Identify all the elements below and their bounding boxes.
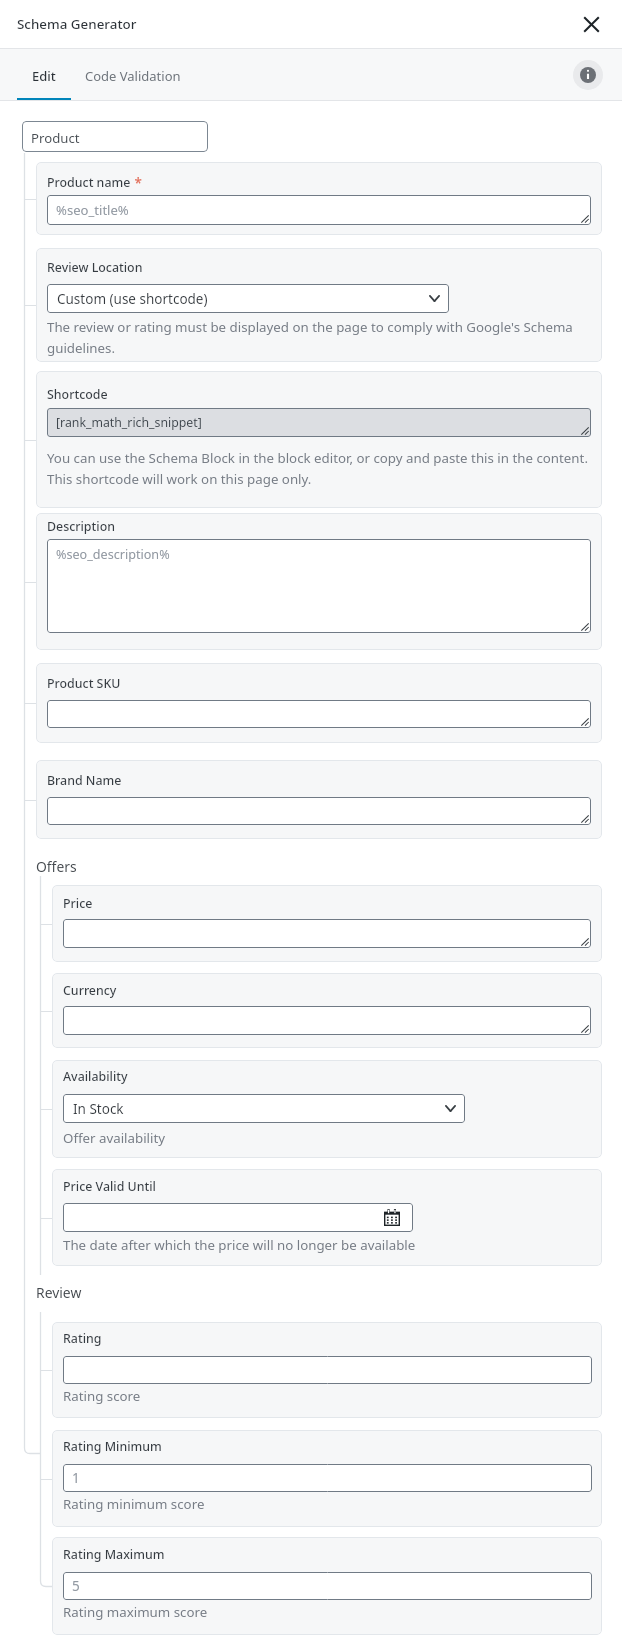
button[interactable] [47,700,591,728]
button[interactable] [63,919,591,948]
staticText: 5 [72,1577,80,1595]
button[interactable] [63,1006,591,1035]
button[interactable]: Edit [17,48,71,101]
button[interactable]: Information [573,60,603,90]
staticText: Product [31,129,80,147]
staticText: Edit [32,67,56,85]
button[interactable]: Pick date [63,1203,413,1232]
staticText: You can use the Schema Block in the bloc… [47,449,590,488]
staticText: Rating Maximum [63,1546,165,1563]
staticText: Product SKU [47,675,121,692]
staticText: Currency [63,982,117,999]
staticText: * [131,174,142,192]
staticText: %seo_title% [56,201,129,219]
staticText: [rank_math_rich_snippet] [56,414,202,431]
button[interactable]: %seo_description% [47,539,591,633]
staticText: Schema Generator [17,15,137,33]
staticText: The date after which the price will no l… [63,1236,590,1254]
button[interactable] [47,797,591,825]
button[interactable]: Close [574,7,608,41]
staticText: Product name [47,174,131,191]
staticText: Rating score [63,1387,590,1405]
button[interactable] [63,1356,592,1384]
staticText: Review [36,1283,82,1302]
button[interactable]: 5 [63,1572,592,1600]
staticText: Rating minimum score [63,1495,590,1513]
staticText: The review or rating must be displayed o… [47,318,590,357]
staticText: Rating [63,1330,102,1347]
button[interactable]: Product [22,121,208,152]
staticText: Code Validation [85,67,181,85]
staticText: Shortcode [47,386,108,403]
staticText: Custom (use shortcode) [57,290,208,308]
staticText: %seo_description% [56,546,170,563]
staticText: Rating Minimum [63,1438,162,1455]
staticText: Description [47,518,115,535]
staticText: Availability [63,1068,128,1085]
staticText: Price [63,895,93,912]
button[interactable]: 1 [63,1464,592,1492]
staticText: Review Location [47,259,143,276]
staticText: Price Valid Until [63,1178,156,1195]
staticText: 1 [72,1469,80,1487]
button[interactable]: %seo_title% [47,195,591,225]
staticText: Brand Name [47,772,122,789]
staticText: Offer availability [63,1129,590,1147]
button[interactable]: In Stock [63,1094,465,1123]
button[interactable]: [rank_math_rich_snippet] [47,408,591,437]
staticText: In Stock [73,1100,124,1118]
button[interactable]: Custom (use shortcode) [47,284,449,313]
staticText: Offers [36,857,77,876]
staticText: Rating maximum score [63,1603,590,1621]
button[interactable]: Code Validation [71,48,195,101]
